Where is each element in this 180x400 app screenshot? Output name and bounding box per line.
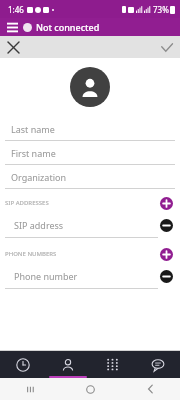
button[interactable]: Open navigation menu: [4, 19, 20, 35]
button[interactable]: Phone number: [14, 270, 158, 282]
staticText: First name: [11, 147, 56, 159]
staticText: PHONE NUMBERS: [5, 250, 57, 258]
button[interactable]: Change contact photo: [70, 67, 110, 107]
staticText: Last name: [11, 123, 55, 135]
button[interactable]: History: [0, 351, 45, 378]
button[interactable]: Add PHONE NUMBERS: [158, 246, 174, 262]
button[interactable]: Back: [120, 378, 180, 400]
staticText: 1:46: [8, 4, 24, 15]
staticText: 73%: [153, 4, 169, 15]
button[interactable]: Remove Phone number: [158, 268, 174, 284]
button[interactable]: Home: [60, 378, 120, 400]
button[interactable]: Add SIP ADDRESSES: [158, 195, 174, 211]
button[interactable]: Dialpad: [90, 351, 135, 378]
staticText: Phone number: [14, 270, 78, 282]
staticText: SIP ADDRESSES: [5, 199, 49, 207]
button[interactable]: SIP address: [14, 219, 158, 231]
button[interactable]: Recent apps: [0, 378, 60, 400]
staticText: SIP address: [14, 219, 64, 231]
button[interactable]: Contacts: [45, 351, 90, 378]
button[interactable]: Remove SIP address: [158, 217, 174, 233]
button[interactable]: Chat: [135, 351, 180, 378]
button[interactable]: Last name: [0, 117, 180, 141]
staticText: Organization: [11, 171, 66, 183]
button[interactable]: Organization: [0, 165, 180, 189]
staticText: Not connected: [36, 21, 100, 33]
button[interactable]: First name: [0, 141, 180, 165]
button[interactable]: Save contact: [157, 37, 177, 57]
button[interactable]: Cancel: [3, 37, 23, 57]
